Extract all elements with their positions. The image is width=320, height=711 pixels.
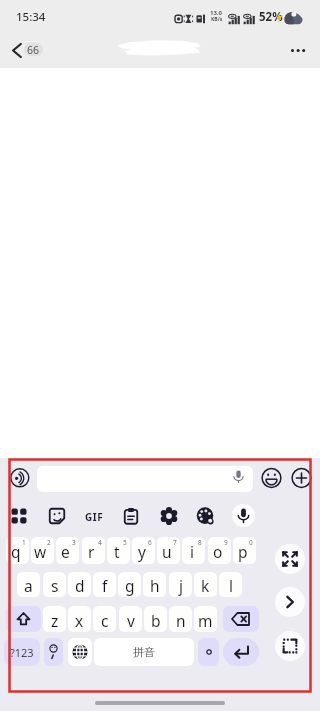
staticText: b xyxy=(151,610,161,631)
button[interactable]: f xyxy=(93,572,116,597)
staticText: s xyxy=(51,575,59,596)
staticText: 3 xyxy=(72,538,76,547)
button[interactable]: Expand xyxy=(275,544,305,574)
button[interactable]: Settings xyxy=(157,504,181,528)
staticText: 6 xyxy=(148,538,152,547)
staticText: 1 xyxy=(22,538,26,547)
button[interactable]: y xyxy=(132,537,155,564)
button[interactable]: j xyxy=(169,572,192,597)
staticText: a xyxy=(24,575,33,596)
button[interactable]: w xyxy=(31,537,54,564)
staticText: 52% xyxy=(259,9,283,25)
button[interactable]: Emoji xyxy=(261,468,282,489)
staticText: 2 xyxy=(47,538,51,547)
button[interactable]: Select region xyxy=(275,631,305,661)
staticText: 5 xyxy=(123,538,127,547)
staticText: 拼音 xyxy=(133,645,155,659)
staticText: k xyxy=(201,575,210,596)
staticText: w xyxy=(34,541,47,562)
button[interactable]: Shift xyxy=(6,606,41,632)
staticText: x xyxy=(75,610,84,631)
staticText: i xyxy=(190,541,194,562)
staticText: p xyxy=(238,541,248,562)
button[interactable]: Voice typing xyxy=(232,504,255,527)
staticText: y xyxy=(138,541,146,562)
button[interactable]: d xyxy=(68,572,91,597)
button[interactable]: r xyxy=(82,537,105,564)
staticText: o xyxy=(213,541,223,562)
staticText: 7 xyxy=(173,538,177,547)
staticText: 66 xyxy=(27,43,40,56)
button[interactable]: o xyxy=(208,537,231,564)
staticText: 15:34 xyxy=(16,9,46,25)
staticText: f xyxy=(102,575,108,596)
button[interactable]: Enter xyxy=(223,638,259,666)
staticText: KB/s xyxy=(211,16,223,23)
staticText: l xyxy=(229,575,233,596)
button[interactable]: Next xyxy=(275,587,305,617)
button[interactable]: g xyxy=(118,572,141,597)
button[interactable]: e xyxy=(56,537,79,564)
staticText: ?123 xyxy=(10,645,34,660)
staticText: d xyxy=(75,575,85,596)
button[interactable]: Theme xyxy=(193,504,217,528)
button[interactable]: v xyxy=(119,606,142,632)
button[interactable]: 66 xyxy=(24,43,43,56)
button[interactable]: z xyxy=(43,606,66,632)
staticText: e xyxy=(61,541,70,562)
button[interactable]: k xyxy=(194,572,217,597)
staticText: r xyxy=(88,541,95,562)
button[interactable]: Backspace xyxy=(223,606,259,632)
staticText: t xyxy=(114,541,120,562)
button[interactable]: u xyxy=(157,537,180,564)
button[interactable]: a xyxy=(17,572,40,597)
staticText: n xyxy=(176,610,186,631)
button[interactable]: h xyxy=(143,572,166,597)
staticText: c xyxy=(101,610,109,631)
staticText: z xyxy=(51,610,59,631)
button[interactable]: m xyxy=(194,606,217,632)
button[interactable]: p xyxy=(233,537,256,564)
staticText: v xyxy=(127,610,135,631)
button[interactable]: Stickers xyxy=(45,504,69,528)
staticText: u xyxy=(162,541,172,562)
button[interactable]: s xyxy=(43,572,66,597)
button[interactable]: l xyxy=(219,572,242,597)
staticText: q xyxy=(11,541,21,562)
button[interactable]: Back xyxy=(7,37,31,61)
button[interactable]: Add xyxy=(291,468,312,489)
button[interactable]: x xyxy=(68,606,91,632)
button[interactable]: Apps xyxy=(7,504,31,528)
staticText: m xyxy=(198,610,213,631)
staticText: 13.0 xyxy=(210,9,222,17)
button[interactable]: Clipboard xyxy=(119,504,143,528)
button[interactable]: Voice input xyxy=(10,468,29,487)
staticText: 0 xyxy=(249,538,253,547)
button[interactable]: Voice message xyxy=(230,468,247,485)
staticText: 8 xyxy=(198,538,202,547)
staticText: GIF xyxy=(85,510,104,524)
button[interactable]: Emoji and comma xyxy=(44,638,63,666)
staticText: j xyxy=(179,575,183,596)
button[interactable]: n xyxy=(169,606,192,632)
staticText: h xyxy=(150,575,160,596)
button[interactable]: t xyxy=(107,537,130,564)
staticText: g xyxy=(125,575,135,596)
button[interactable] xyxy=(198,638,219,666)
staticText: 9 xyxy=(224,538,228,547)
staticText: 4 xyxy=(98,538,102,547)
button[interactable]: 拼音 xyxy=(94,638,194,666)
button[interactable]: i xyxy=(182,537,205,564)
button[interactable]: c xyxy=(93,606,116,632)
button[interactable]: q xyxy=(6,537,29,564)
button[interactable]: b xyxy=(144,606,167,632)
button[interactable] xyxy=(37,466,253,492)
button[interactable]: ?123 xyxy=(4,638,40,666)
button[interactable]: More options xyxy=(286,40,310,61)
button[interactable]: Switch language xyxy=(68,638,92,666)
